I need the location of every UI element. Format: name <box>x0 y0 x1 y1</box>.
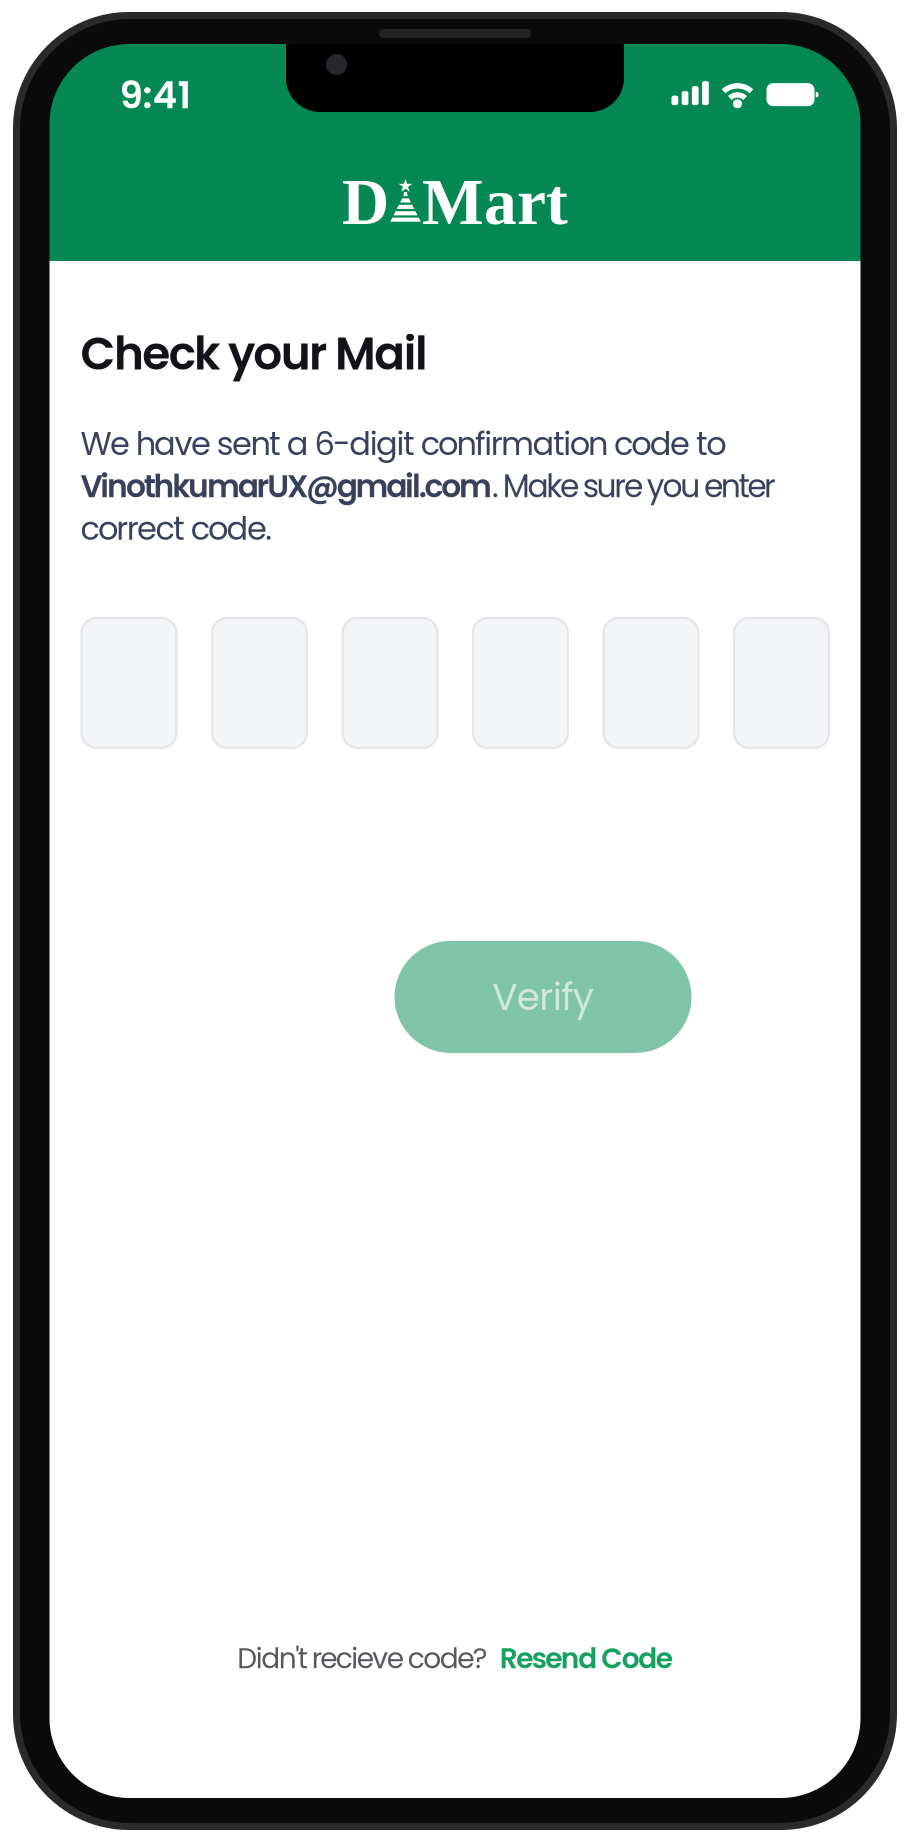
staticText: Resend Code <box>500 1639 673 1678</box>
button[interactable]: Verify <box>394 941 691 1053</box>
staticText: correct code. <box>80 506 272 551</box>
staticText: 9:41 <box>119 69 191 121</box>
staticText: Didn't recieve code? <box>237 1639 488 1678</box>
staticText: We have sent a 6-digit confirmation code… <box>80 421 726 466</box>
staticText: VinothkumarUX@gmail.com <box>80 464 492 508</box>
button[interactable]: Didn't recieve code? <box>237 1639 673 1678</box>
staticText: . Make sure you enter <box>492 464 776 508</box>
staticText: Mart <box>422 166 568 238</box>
staticText: Check your Mail <box>80 322 428 385</box>
staticText: Verify <box>492 971 594 1023</box>
staticText: D <box>342 166 389 238</box>
